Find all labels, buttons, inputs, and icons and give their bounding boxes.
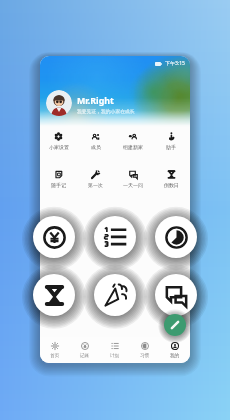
staticText: 一天一问 — [123, 182, 143, 188]
button[interactable]: 小家设置 — [40, 132, 77, 150]
staticText: 成员 — [91, 144, 101, 150]
staticText: 倒数日 — [164, 182, 179, 188]
button[interactable]: Checklist — [94, 216, 136, 258]
staticText: 小家设置 — [49, 144, 69, 150]
button[interactable]: Time tracker — [155, 216, 197, 258]
staticText: 我要见证，我的小家在成长 — [77, 108, 135, 114]
button[interactable]: Celebrate — [94, 274, 136, 316]
button[interactable]: 随手记 — [40, 170, 77, 188]
button[interactable]: 成员 — [77, 132, 114, 150]
button[interactable]: 计划 — [100, 342, 130, 359]
button[interactable]: 第一次 — [77, 170, 114, 188]
staticText: Mr.Right — [77, 95, 114, 107]
staticText: 我的 — [170, 353, 180, 359]
staticText: 计划 — [110, 353, 120, 359]
staticText: 首页 — [50, 353, 60, 359]
staticText: 记账 — [80, 353, 90, 359]
staticText: 随手记 — [51, 182, 66, 188]
button[interactable]: Messages — [155, 274, 197, 316]
button[interactable]: 一天一问 — [114, 170, 152, 188]
button[interactable]: 助手 — [152, 132, 190, 150]
button[interactable]: 习惯 — [130, 342, 160, 359]
staticText: 习惯 — [140, 353, 150, 359]
button[interactable]: 倒数日 — [152, 170, 190, 188]
button[interactable]: Accounting — [33, 216, 75, 258]
staticText: 助手 — [166, 144, 176, 150]
button[interactable]: Profile photo — [46, 90, 72, 116]
button[interactable]: Countdown — [33, 274, 75, 316]
button[interactable]: 记账 — [70, 342, 100, 359]
button[interactable]: 组建新家 — [114, 132, 152, 150]
button[interactable]: Compose new entry — [164, 314, 186, 336]
button[interactable]: 我的 — [160, 342, 190, 359]
staticText: 组建新家 — [123, 144, 143, 150]
staticText: 下午3:15 — [165, 60, 185, 67]
staticText: 第一次 — [88, 182, 103, 188]
button[interactable]: 首页 — [40, 342, 70, 359]
